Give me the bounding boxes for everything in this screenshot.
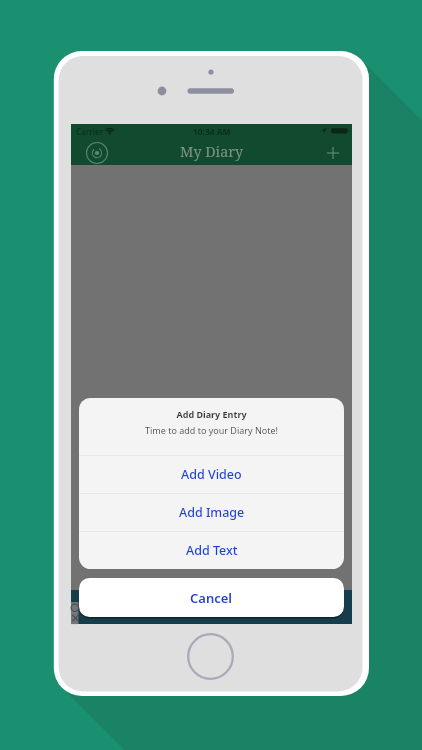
button[interactable]: Cancel bbox=[79, 578, 344, 617]
button[interactable]: Add Image bbox=[79, 494, 344, 531]
staticText: Time to add to your Diary Note! bbox=[145, 424, 278, 436]
staticText: Carrier bbox=[76, 126, 104, 137]
staticText: Add Text bbox=[186, 542, 238, 559]
staticText: Add Image bbox=[179, 504, 245, 521]
staticText: Add Diary Entry bbox=[176, 408, 247, 420]
staticText: My Diary bbox=[180, 142, 244, 161]
staticText: Cancel bbox=[190, 589, 233, 607]
button[interactable]: Tab bar bbox=[71, 590, 352, 624]
button[interactable]: Add entry bbox=[321, 141, 345, 165]
button[interactable]: Privacy bbox=[85, 141, 109, 165]
staticText: Add Video bbox=[181, 466, 242, 483]
button[interactable]: Add Video bbox=[79, 456, 344, 493]
button[interactable]: Add Text bbox=[79, 532, 344, 569]
staticText: 10:34 AM bbox=[193, 126, 231, 137]
